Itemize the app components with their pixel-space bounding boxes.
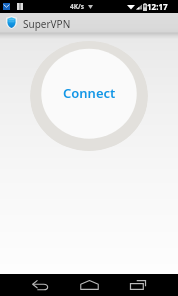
button[interactable]: Recent apps: [121, 274, 155, 296]
staticText: 12:17: [147, 1, 168, 12]
button[interactable]: Back: [23, 274, 57, 296]
staticText: SuperVPN: [23, 17, 71, 31]
button[interactable]: Connect: [30, 41, 148, 151]
staticText: Connect: [63, 84, 116, 102]
button[interactable]: Home: [72, 274, 106, 296]
staticText: 4K/s: [70, 2, 84, 11]
